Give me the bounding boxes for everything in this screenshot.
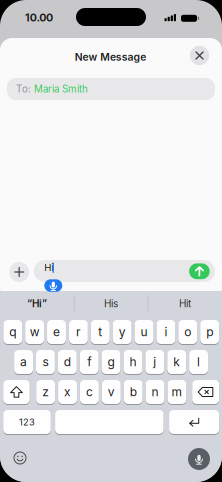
button[interactable]: z: [36, 380, 55, 404]
button[interactable]: “Hi”: [2, 294, 72, 313]
button[interactable]: [189, 263, 210, 279]
button[interactable]: Hit: [150, 294, 220, 313]
staticText: Hit: [179, 297, 191, 310]
staticText: u: [140, 325, 147, 339]
button[interactable]: y: [113, 320, 132, 344]
button[interactable]: l: [189, 350, 208, 374]
staticText: His: [104, 297, 118, 310]
staticText: s: [42, 355, 48, 369]
button[interactable]: [190, 46, 209, 65]
staticText: a: [20, 355, 27, 369]
staticText: 10.00: [25, 11, 53, 24]
staticText: q: [9, 325, 16, 339]
staticText: x: [64, 385, 71, 399]
button[interactable]: q: [3, 320, 22, 344]
button[interactable]: [3, 380, 30, 404]
button[interactable]: [169, 410, 219, 434]
button[interactable]: s: [36, 350, 55, 374]
staticText: Hi: [44, 262, 53, 273]
staticText: m: [171, 385, 182, 399]
button[interactable]: d: [58, 350, 77, 374]
staticText: r: [76, 325, 81, 339]
button[interactable]: o: [178, 320, 197, 344]
staticText: e: [53, 325, 60, 339]
staticText: f: [87, 355, 91, 369]
staticText: t: [98, 325, 102, 339]
button[interactable]: e: [47, 320, 66, 344]
staticText: l: [197, 355, 200, 369]
staticText: d: [64, 355, 71, 369]
staticText: o: [184, 325, 191, 339]
button[interactable]: v: [102, 380, 121, 404]
button[interactable]: j: [145, 350, 164, 374]
staticText: p: [206, 325, 213, 339]
button[interactable]: m: [167, 380, 186, 404]
button[interactable]: t: [91, 320, 110, 344]
button[interactable]: r: [69, 320, 88, 344]
button[interactable]: b: [124, 380, 143, 404]
button[interactable]: n: [146, 380, 164, 404]
button[interactable]: x: [58, 380, 77, 404]
button[interactable]: a: [14, 350, 33, 374]
staticText: n: [152, 385, 159, 399]
button[interactable]: [55, 410, 164, 434]
staticText: c: [86, 385, 93, 399]
button[interactable]: h: [123, 350, 142, 374]
staticText: y: [119, 325, 126, 339]
staticText: h: [129, 355, 136, 369]
button[interactable]: k: [167, 350, 186, 374]
button[interactable]: His: [76, 294, 146, 313]
button[interactable]: u: [135, 320, 153, 344]
button[interactable]: 123: [3, 410, 51, 434]
button[interactable]: [188, 448, 210, 470]
button[interactable]: [9, 262, 29, 282]
button[interactable]: f: [80, 350, 99, 374]
staticText: w: [30, 325, 40, 339]
staticText: j: [153, 355, 156, 369]
button[interactable]: g: [102, 350, 120, 374]
button[interactable]: w: [25, 320, 44, 344]
staticText: i: [164, 325, 167, 339]
staticText: Maria Smith: [34, 83, 88, 95]
staticText: To:: [16, 83, 31, 95]
button[interactable]: c: [80, 380, 99, 404]
staticText: v: [108, 385, 115, 399]
staticText: z: [42, 385, 49, 399]
staticText: “Hi”: [27, 297, 47, 310]
button[interactable]: [13, 451, 26, 464]
button[interactable]: i: [156, 320, 175, 344]
staticText: b: [130, 385, 137, 399]
button[interactable]: To:: [7, 78, 215, 100]
staticText: g: [108, 355, 115, 369]
staticText: k: [173, 355, 180, 369]
button[interactable]: p: [200, 320, 219, 344]
staticText: 123: [19, 416, 35, 428]
staticText: New Message: [75, 51, 146, 63]
button[interactable]: Hi: [34, 260, 215, 282]
button[interactable]: [192, 380, 219, 404]
